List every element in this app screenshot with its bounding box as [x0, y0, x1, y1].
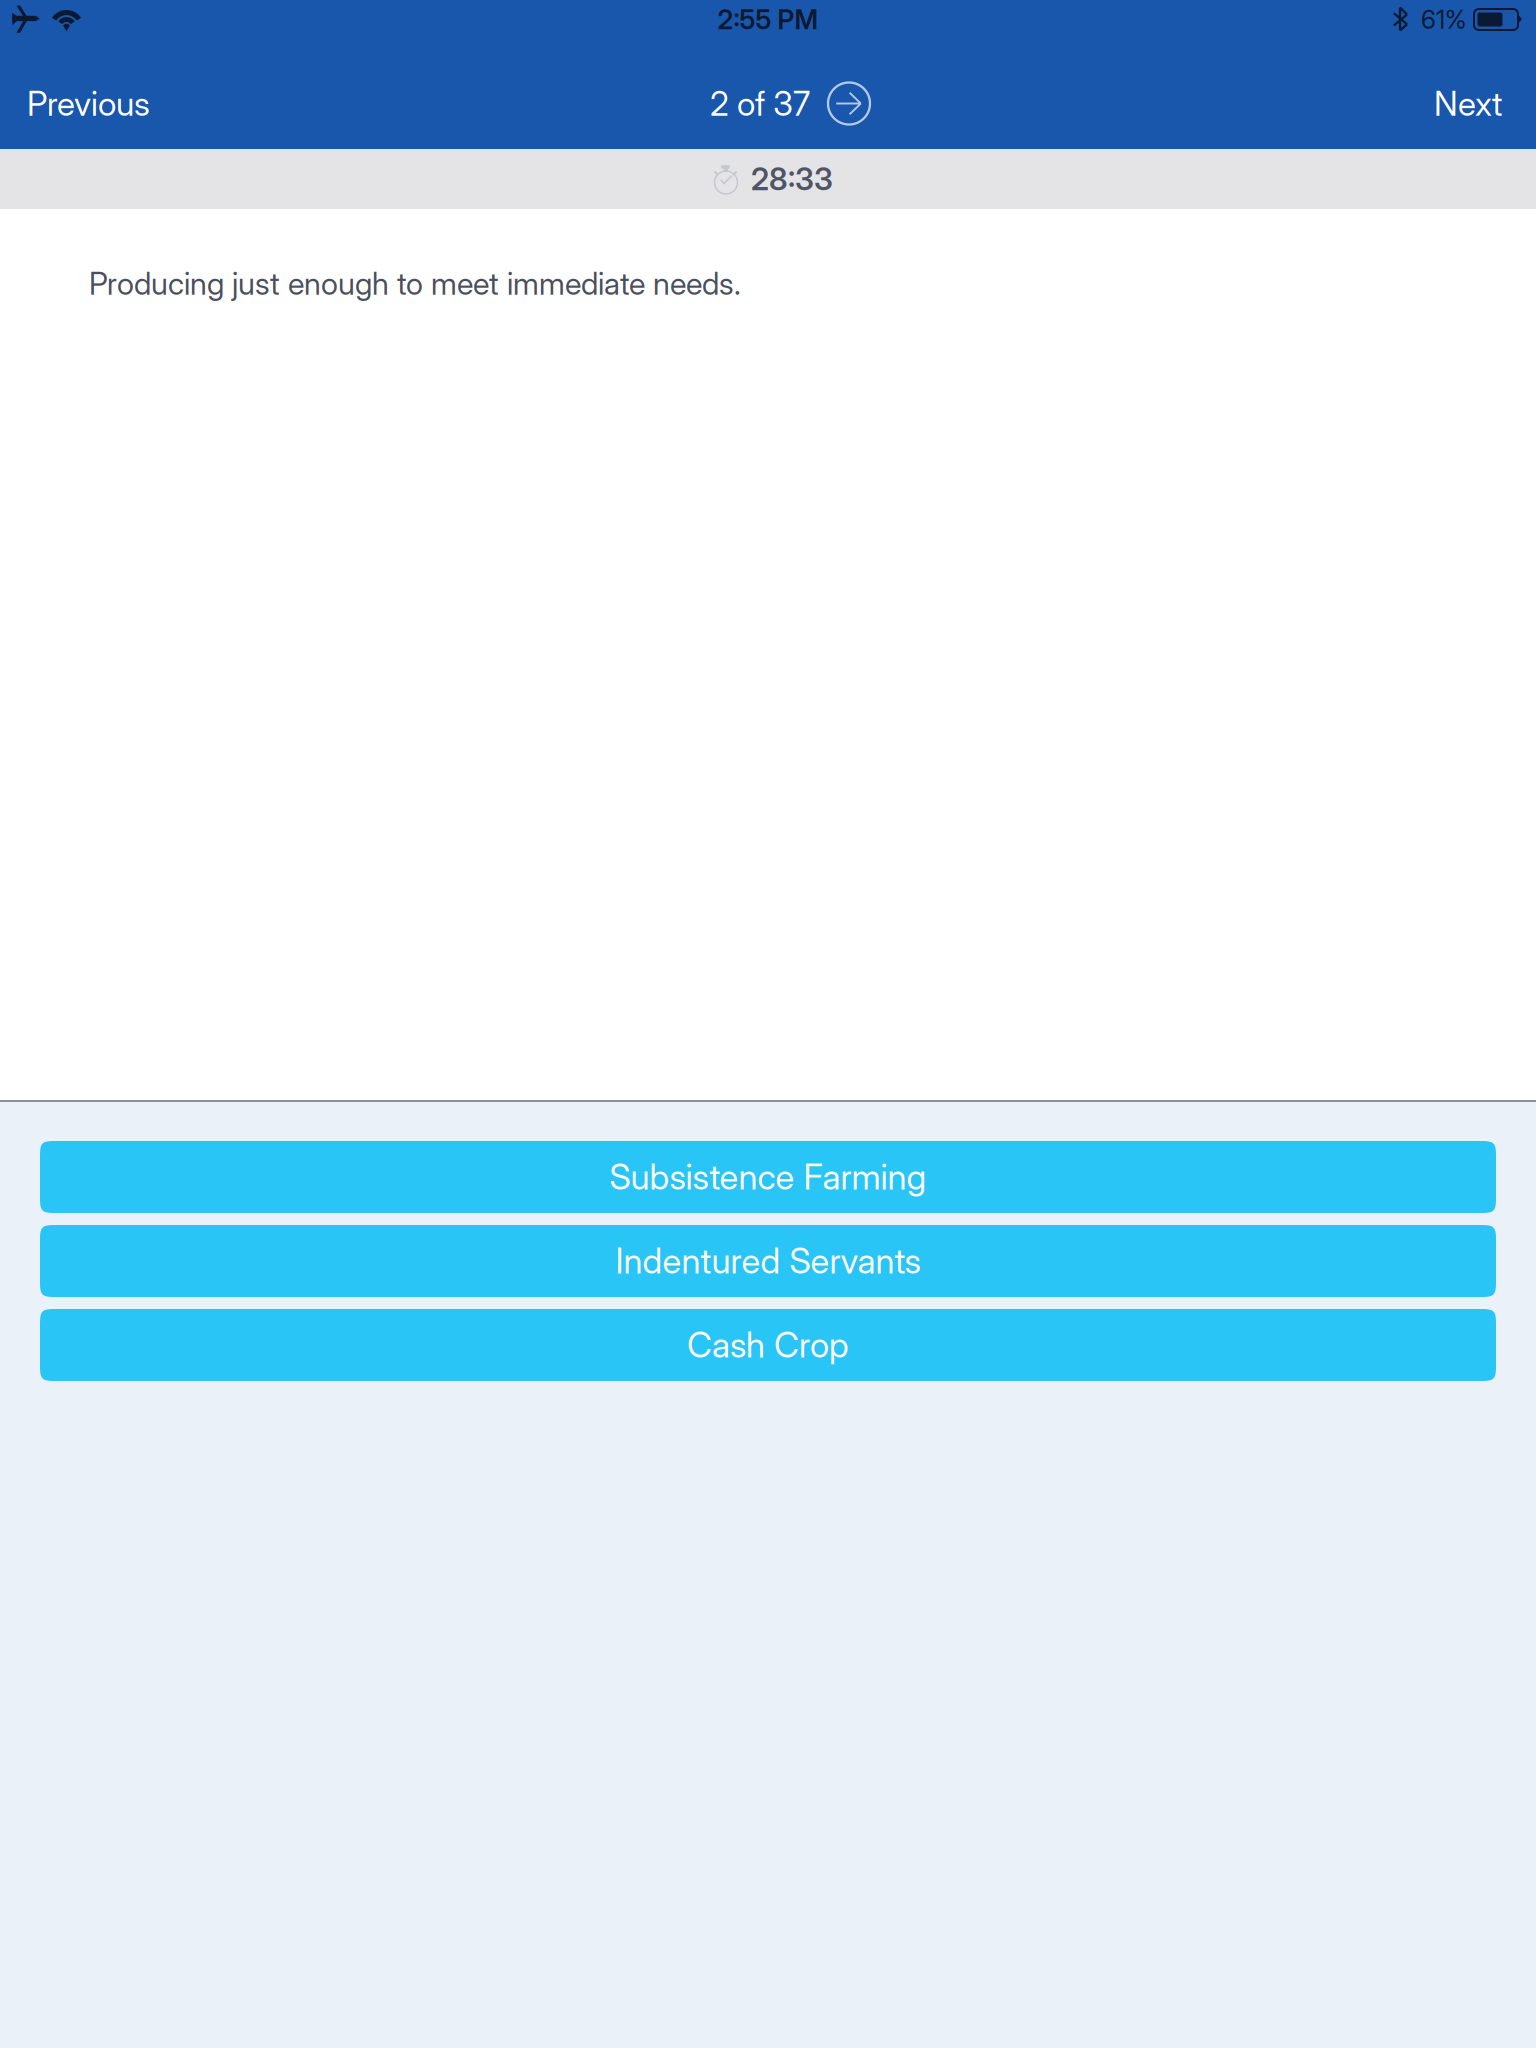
- button[interactable]: Next: [1400, 45, 1536, 149]
- staticText: 61%: [1421, 4, 1466, 35]
- staticText: 2:55 PM: [717, 3, 818, 36]
- button[interactable]: Subsistence Farming: [40, 1141, 1496, 1213]
- button[interactable]: Previous: [0, 45, 177, 149]
- staticText: Subsistence Farming: [609, 1156, 926, 1198]
- button[interactable]: Cash Crop: [40, 1309, 1496, 1381]
- staticText: Producing just enough to meet immediate …: [89, 265, 741, 302]
- staticText: Cash Crop: [687, 1324, 849, 1366]
- button[interactable]: Go to question: [828, 82, 870, 124]
- staticText: Next: [1434, 83, 1502, 124]
- staticText: 2 of 37: [710, 83, 810, 124]
- staticText: Previous: [27, 83, 150, 124]
- button[interactable]: Indentured Servants: [40, 1225, 1496, 1297]
- staticText: Indentured Servants: [615, 1240, 920, 1282]
- staticText: 28:33: [751, 160, 833, 197]
